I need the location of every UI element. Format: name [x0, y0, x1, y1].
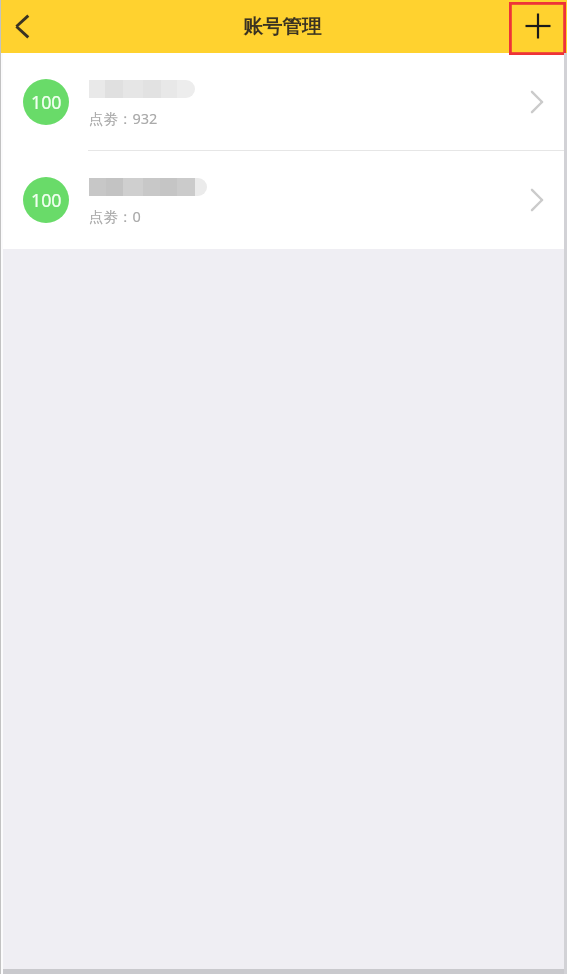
button[interactable]: 100 — [0, 53, 567, 150]
staticText: 点劵：932 — [89, 108, 158, 128]
button[interactable]: Back — [0, 0, 46, 53]
staticText: 点劵：0 — [89, 206, 141, 226]
staticText: 100 — [31, 90, 62, 114]
button[interactable]: 100 — [0, 151, 567, 249]
staticText: 账号管理 — [243, 14, 321, 39]
button[interactable]: Add account — [509, 2, 567, 55]
staticText: 100 — [31, 188, 62, 212]
